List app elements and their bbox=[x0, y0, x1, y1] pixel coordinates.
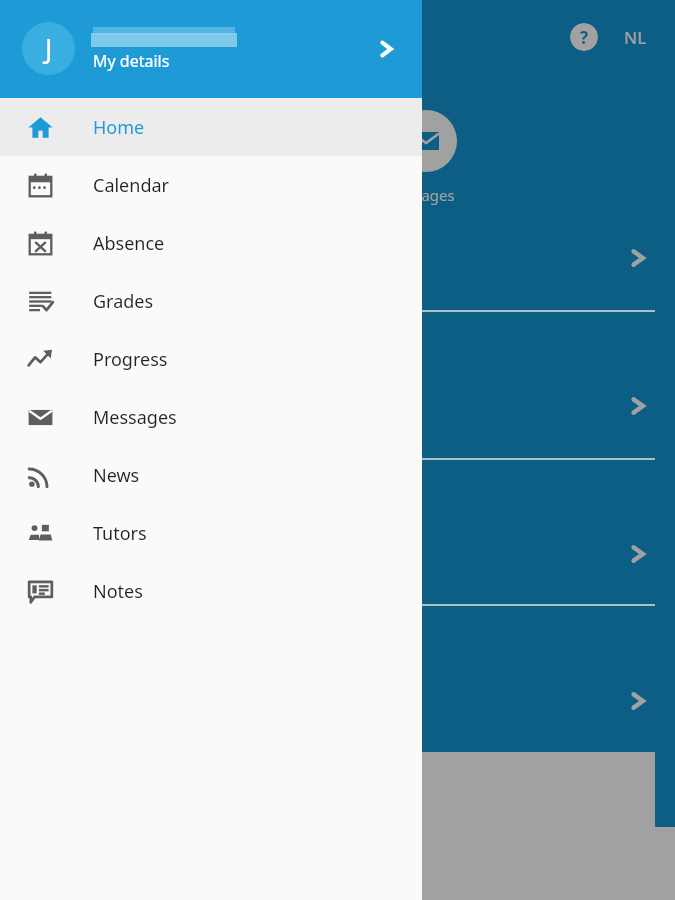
staticText: Grades bbox=[93, 289, 154, 314]
button[interactable]: Grades bbox=[0, 272, 422, 330]
button[interactable]: Help bbox=[570, 23, 598, 51]
button[interactable]: Absence bbox=[0, 214, 422, 272]
staticText: Messages bbox=[93, 405, 177, 430]
staticText: Calendar bbox=[93, 173, 169, 198]
staticText: News bbox=[93, 463, 140, 488]
button[interactable]: J bbox=[0, 0, 422, 98]
staticText: Absence bbox=[93, 231, 165, 256]
button[interactable]: Calendar bbox=[0, 156, 422, 214]
button[interactable] bbox=[0, 671, 675, 731]
staticText: NL bbox=[624, 26, 647, 49]
button[interactable]: Notes bbox=[0, 562, 422, 620]
staticText: Messages bbox=[385, 185, 455, 205]
staticText: Notes bbox=[93, 579, 143, 604]
button[interactable] bbox=[0, 524, 675, 584]
button[interactable] bbox=[0, 228, 675, 288]
button[interactable] bbox=[0, 376, 675, 436]
staticText: Home bbox=[93, 115, 145, 140]
staticText: My details bbox=[93, 50, 170, 72]
button[interactable]: Progress bbox=[0, 330, 422, 388]
button[interactable]: Home bbox=[0, 98, 422, 156]
staticText: J bbox=[45, 30, 53, 67]
staticText: Tutors bbox=[93, 521, 147, 546]
staticText: Progress bbox=[93, 347, 168, 372]
button[interactable]: NL bbox=[612, 24, 658, 50]
button[interactable]: Tutors bbox=[0, 504, 422, 562]
button[interactable]: Messages bbox=[0, 388, 422, 446]
button[interactable]: News bbox=[0, 446, 422, 504]
staticText: ? bbox=[580, 26, 589, 49]
